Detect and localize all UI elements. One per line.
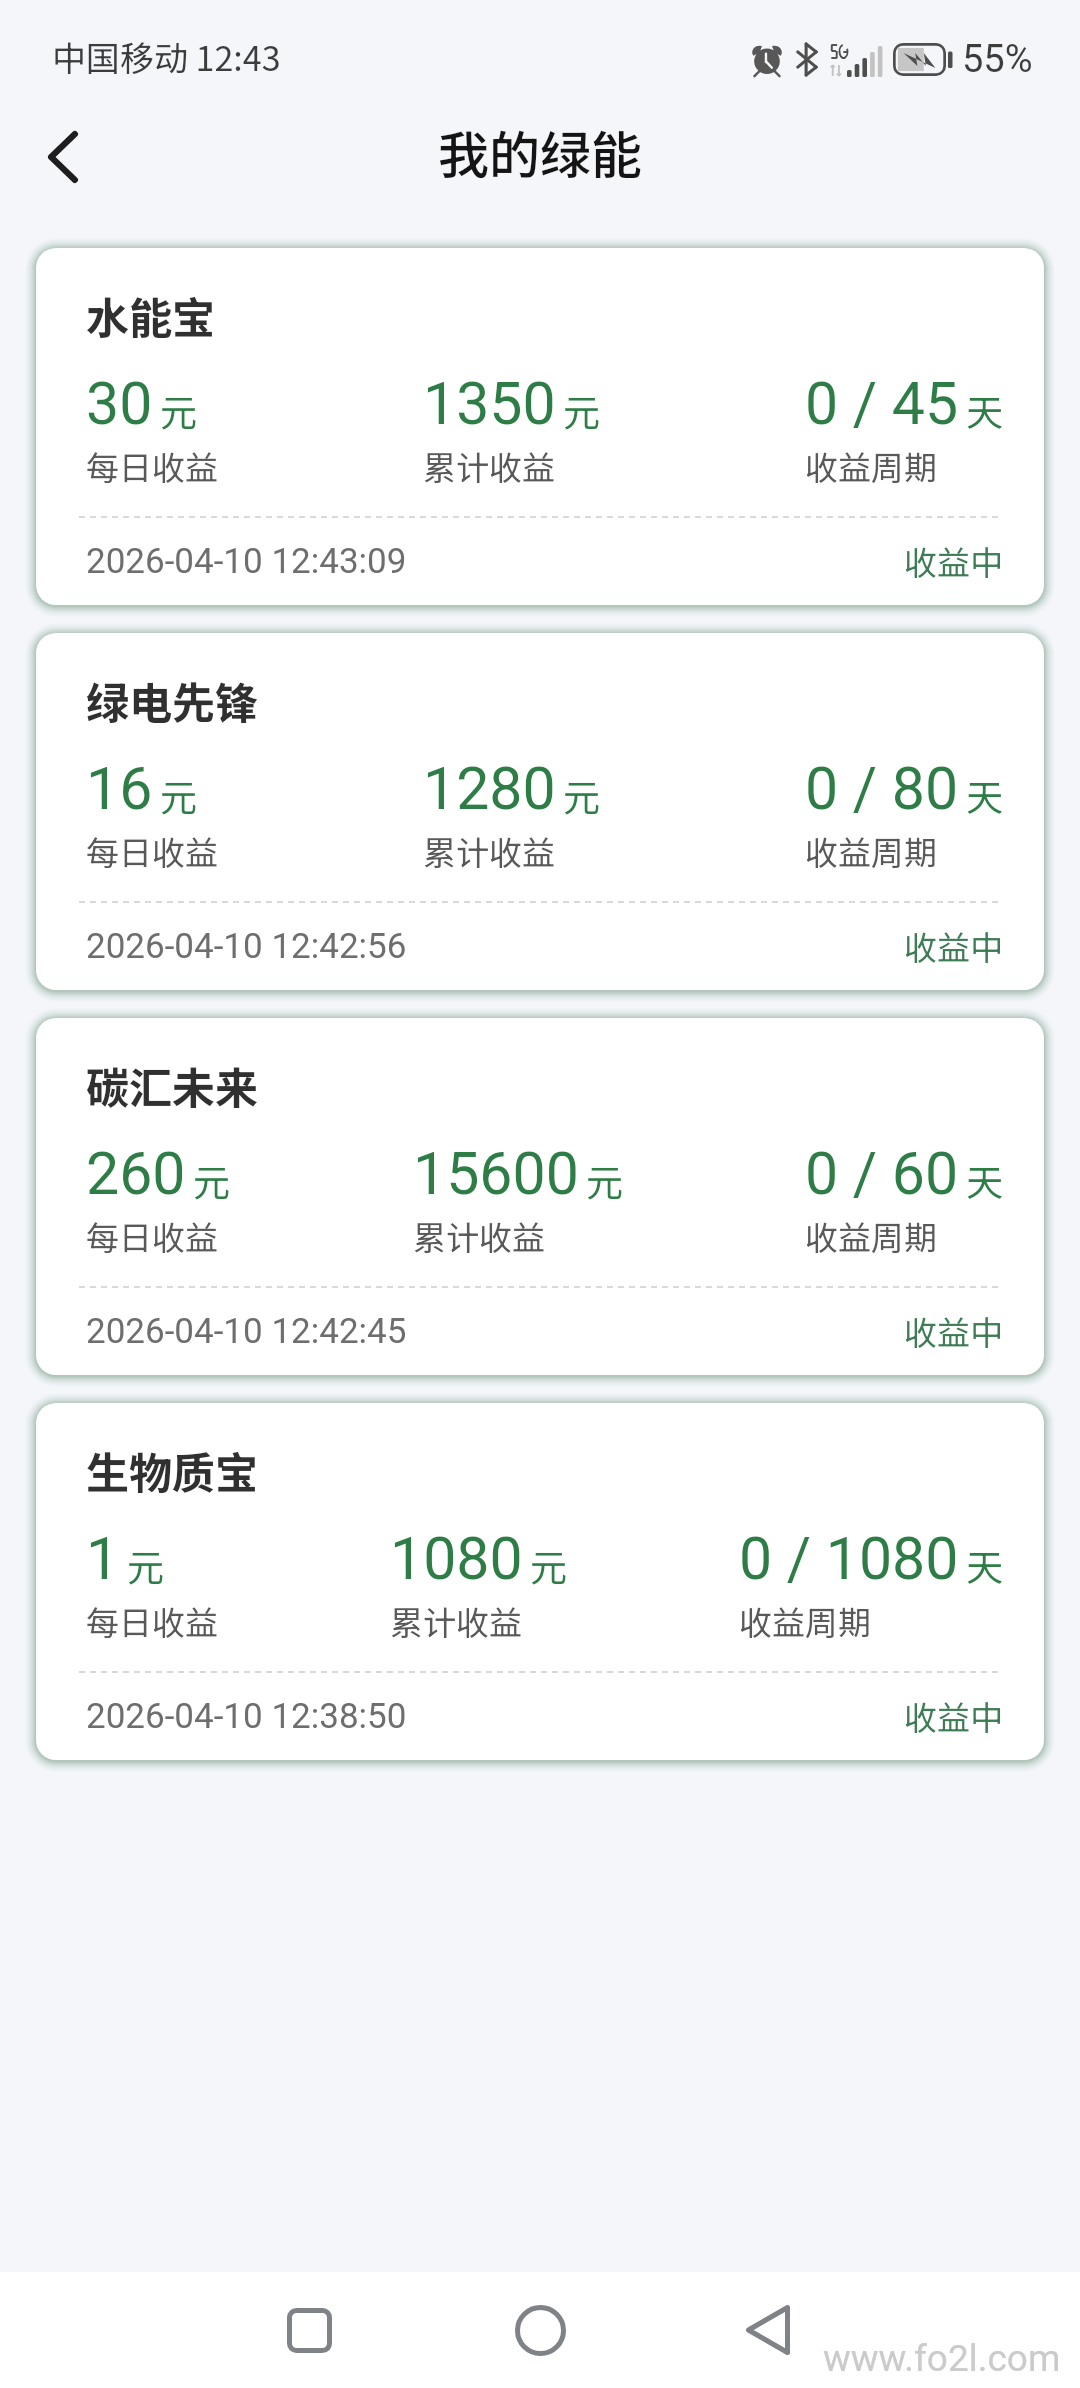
staticText: 天	[966, 1153, 1003, 1207]
button[interactable]: 绿电先锋	[36, 633, 1044, 990]
staticText: 元	[193, 1153, 230, 1207]
staticText: 2026-04-10 12:38:50	[86, 1696, 407, 1737]
staticText: 每日收益	[86, 827, 218, 875]
staticText: 累计收益	[390, 1597, 522, 1645]
staticText: 水能宝	[86, 284, 215, 346]
staticText: 累计收益	[423, 827, 555, 875]
staticText: 1280	[423, 754, 556, 823]
button[interactable]: 水能宝	[36, 248, 1044, 605]
staticText: 收益周期	[739, 1597, 871, 1645]
staticText: 元	[160, 768, 197, 822]
staticText: 元	[530, 1538, 567, 1592]
staticText: 生物质宝	[86, 1439, 258, 1501]
staticText: 1	[86, 1524, 120, 1593]
staticText: 中国移动 12:43	[52, 32, 281, 81]
staticText: 1350	[423, 369, 556, 438]
staticText: 每日收益	[86, 1212, 218, 1260]
staticText: 收益周期	[805, 827, 937, 875]
staticText: 2026-04-10 12:43:09	[86, 541, 407, 582]
button[interactable]: Home	[485, 2275, 595, 2385]
staticText: 元	[563, 383, 600, 437]
staticText: 累计收益	[413, 1212, 545, 1260]
staticText: 2026-04-10 12:42:56	[86, 926, 407, 967]
staticText: 收益中	[904, 922, 1003, 970]
staticText: 元	[127, 1538, 164, 1592]
staticText: 0 / 60	[805, 1139, 959, 1208]
staticText: 我的绿能	[438, 115, 643, 189]
button[interactable]: 碳汇未来	[36, 1018, 1044, 1375]
staticText: 收益中	[904, 1692, 1003, 1740]
staticText: 30	[86, 369, 153, 438]
button[interactable]: Back	[713, 2275, 823, 2385]
button[interactable]: Recent apps	[254, 2275, 364, 2385]
staticText: 每日收益	[86, 1597, 218, 1645]
staticText: 260	[86, 1139, 186, 1208]
staticText: 每日收益	[86, 442, 218, 490]
staticText: 1080	[390, 1524, 523, 1593]
staticText: 元	[586, 1153, 623, 1207]
staticText: 收益周期	[805, 442, 937, 490]
staticText: 天	[966, 383, 1003, 437]
staticText: 0 / 45	[805, 369, 959, 438]
staticText: 2026-04-10 12:42:45	[86, 1311, 407, 1352]
staticText: 16	[86, 754, 153, 823]
button[interactable]: Back	[8, 106, 118, 208]
staticText: 收益中	[904, 537, 1003, 585]
staticText: 收益周期	[805, 1212, 937, 1260]
staticText: www.fo2l.com	[823, 2337, 1061, 2380]
staticText: 15600	[413, 1139, 579, 1208]
staticText: 元	[563, 768, 600, 822]
staticText: 累计收益	[423, 442, 555, 490]
staticText: 收益中	[904, 1307, 1003, 1355]
staticText: 0 / 1080	[739, 1524, 959, 1593]
staticText: 绿电先锋	[86, 669, 258, 731]
staticText: 天	[966, 1538, 1003, 1592]
staticText: 55%	[962, 37, 1033, 82]
staticText: 天	[966, 768, 1003, 822]
staticText: 0 / 80	[805, 754, 959, 823]
staticText: 碳汇未来	[86, 1054, 258, 1116]
button[interactable]: 生物质宝	[36, 1403, 1044, 1760]
staticText: 元	[160, 383, 197, 437]
